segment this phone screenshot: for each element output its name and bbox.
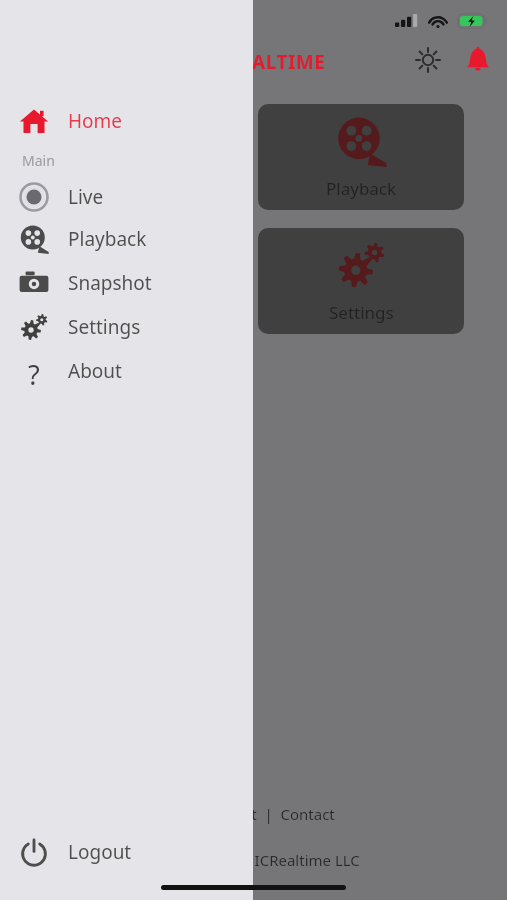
staticText: Playback: [68, 226, 147, 252]
staticText: Playback: [326, 177, 397, 200]
staticText: Snapshot: [68, 270, 152, 296]
button[interactable]: Playback: [0, 217, 253, 261]
button[interactable]: Settings: [258, 228, 464, 334]
button[interactable]: Settings: [0, 305, 253, 349]
button[interactable]: Home: [0, 100, 253, 141]
staticText: Home: [68, 108, 123, 134]
button[interactable]: Notifications: [457, 39, 499, 81]
staticText: ?: [28, 356, 40, 386]
staticText: Main: [22, 151, 55, 170]
button[interactable]: Toggle theme: [407, 39, 449, 81]
staticText: Settings: [329, 301, 394, 324]
staticText: REALTIME: [228, 49, 326, 75]
staticText: Logout: [68, 839, 132, 865]
button[interactable]: Snapshot: [0, 261, 253, 305]
staticText: Support | Contact: [200, 804, 335, 824]
staticText: Settings: [68, 314, 141, 340]
staticText: © 2021 ICRealtime LLC: [200, 850, 360, 870]
button[interactable]: Playback: [258, 104, 464, 210]
staticText: Live: [68, 184, 104, 210]
button[interactable]: Live: [0, 176, 253, 217]
button[interactable]: Logout: [0, 830, 253, 874]
staticText: About: [68, 358, 122, 384]
button[interactable]: ?: [0, 349, 253, 393]
